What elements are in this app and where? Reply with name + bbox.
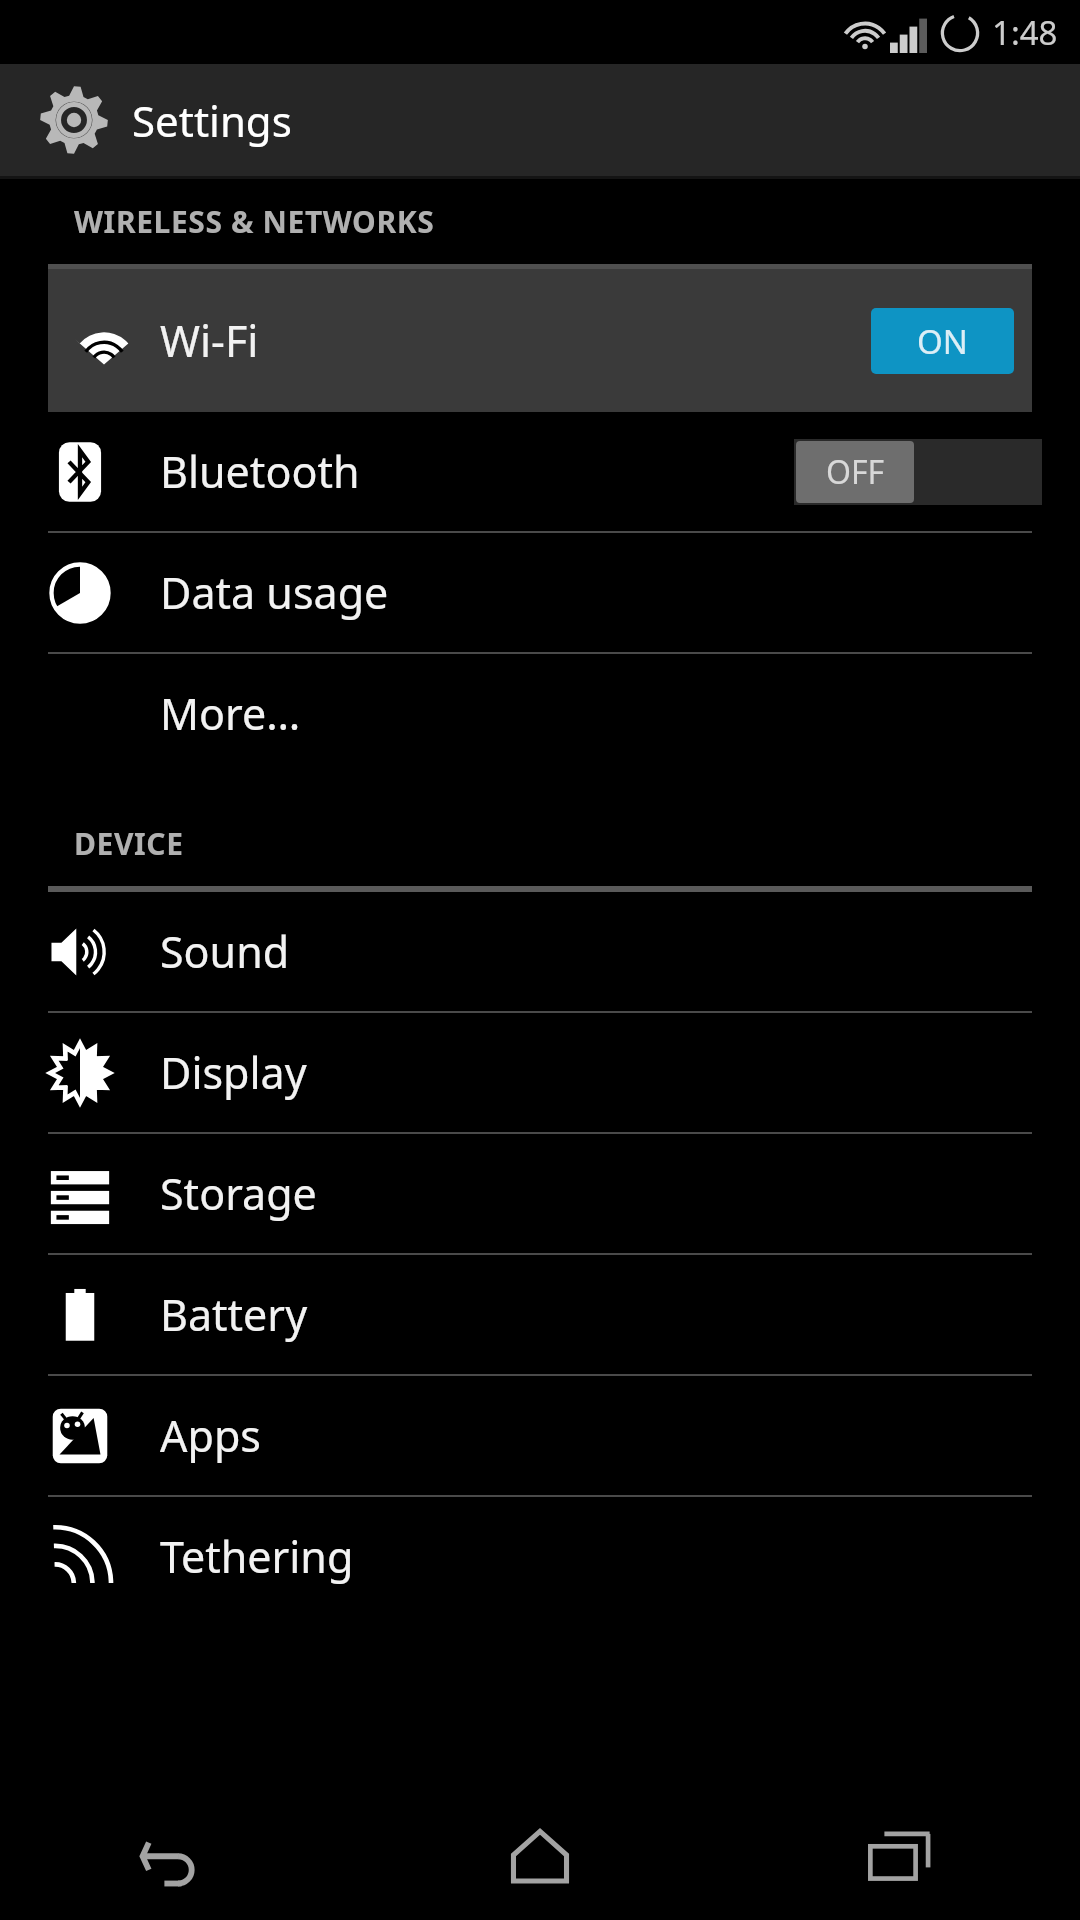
button[interactable]: Battery [0,1255,1080,1374]
staticText: Sound [160,922,1080,981]
button[interactable]: Back [0,1790,360,1920]
staticText: Tethering [160,1527,1080,1586]
button[interactable]: Storage [0,1134,1080,1253]
button[interactable]: Recents [720,1790,1080,1920]
staticText: DEVICE [74,823,184,864]
button[interactable]: Data usage [0,533,1080,652]
staticText: Display [160,1043,1080,1102]
staticText: Apps [160,1406,1080,1465]
button[interactable]: Sound [0,892,1080,1011]
staticText: Storage [160,1164,1080,1223]
staticText: 1:48 [992,10,1058,55]
button[interactable]: Tethering [0,1497,1080,1616]
staticText: ON [917,319,968,364]
staticText: Data usage [160,563,1080,622]
staticText: More… [160,684,1080,743]
button[interactable]: Wi-Fi [48,269,1032,412]
button[interactable]: Home [360,1790,720,1920]
staticText: Battery [160,1285,1080,1344]
staticText: Wi-Fi [160,311,871,370]
button[interactable]: Bluetooth [0,412,1080,531]
staticText: OFF [826,450,885,494]
button[interactable]: Apps [0,1376,1080,1495]
button[interactable]: Display [0,1013,1080,1132]
staticText: Bluetooth [160,442,794,501]
staticText: Settings [132,92,292,149]
button[interactable]: More… [0,654,1080,773]
button[interactable]: OFF [794,439,1042,505]
button[interactable]: Settings [0,64,1080,176]
button[interactable]: ON [871,308,1014,374]
staticText: WIRELESS & NETWORKS [74,201,435,242]
